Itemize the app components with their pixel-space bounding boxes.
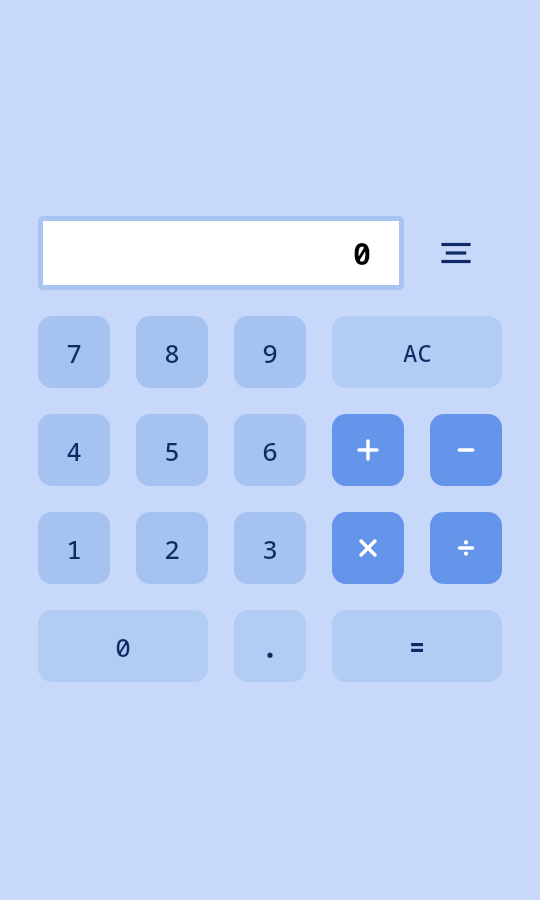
staticText: .	[261, 626, 279, 667]
button[interactable]: Multiply	[332, 512, 404, 584]
button[interactable]: 8	[136, 316, 208, 388]
staticText: 7	[66, 335, 82, 370]
button[interactable]: 0	[43, 221, 399, 285]
button[interactable]: 4	[38, 414, 110, 486]
button[interactable]: AC	[332, 316, 502, 388]
button[interactable]: .	[234, 610, 306, 682]
button[interactable]: Plus	[332, 414, 404, 486]
button[interactable]: 6	[234, 414, 306, 486]
staticText: 0	[115, 629, 131, 664]
button[interactable]: 0	[38, 610, 208, 682]
staticText: 5	[164, 433, 180, 468]
staticText: 9	[262, 335, 278, 370]
staticText: 0	[353, 233, 371, 274]
staticText: 4	[66, 433, 82, 468]
staticText: 2	[164, 531, 180, 566]
button[interactable]: 3	[234, 512, 306, 584]
button[interactable]: 1	[38, 512, 110, 584]
staticText: 1	[66, 531, 82, 566]
button[interactable]: Divide	[430, 512, 502, 584]
button[interactable]: 9	[234, 316, 306, 388]
button[interactable]: =	[332, 610, 502, 682]
staticText: 8	[164, 335, 180, 370]
staticText: =	[409, 629, 425, 664]
staticText: 3	[262, 531, 278, 566]
staticText: AC	[403, 336, 432, 369]
button[interactable]: 5	[136, 414, 208, 486]
button[interactable]: Minus	[430, 414, 502, 486]
button[interactable]: 2	[136, 512, 208, 584]
staticText: 6	[262, 433, 278, 468]
button[interactable]: Menu	[430, 227, 482, 279]
button[interactable]: 7	[38, 316, 110, 388]
